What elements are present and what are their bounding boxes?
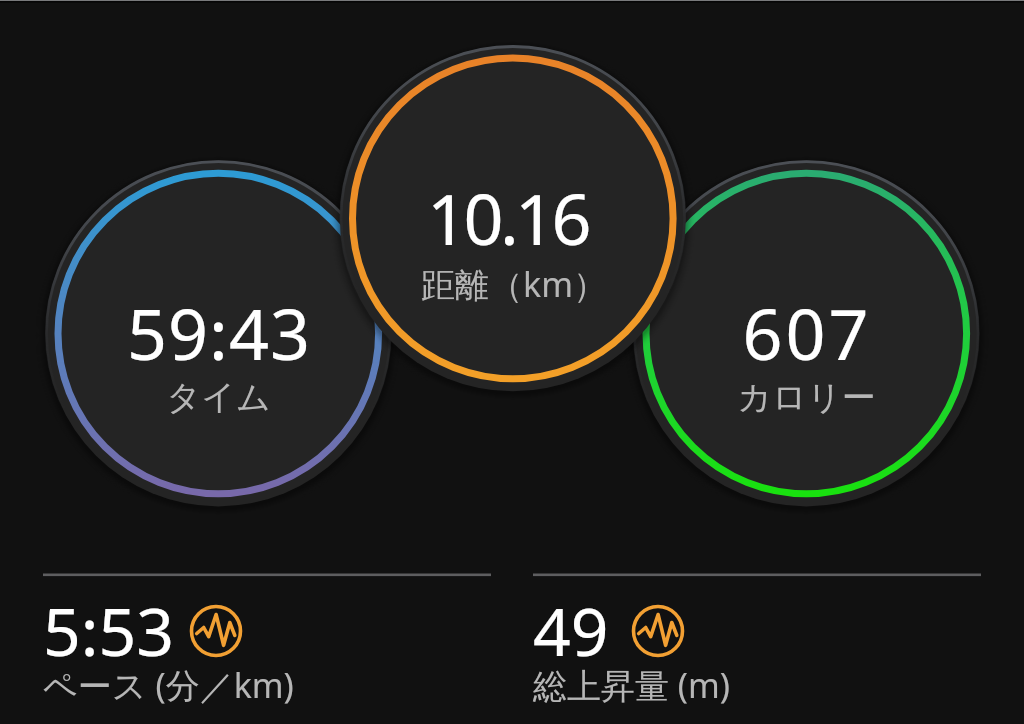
staticText: 607 [742,285,872,380]
other: Pace [189,604,243,658]
button[interactable]: 10.16 [353,58,674,379]
staticText: 5:53 [43,585,174,675]
staticText: 総上昇量 (m) [533,662,731,708]
staticText: タイム [166,376,271,419]
staticText: ペース (分／km) [43,662,294,708]
button[interactable]: 5:53 [43,560,513,724]
staticText: 10.16 [427,170,588,265]
other: Elevation gain [631,604,685,658]
staticText: 49 [533,585,609,675]
staticText: 距離（km） [421,261,607,307]
staticText: 59:43 [127,285,311,380]
button[interactable]: 59:43 [58,173,379,494]
staticText: カロリー [737,376,876,419]
button[interactable]: 607 [646,173,967,494]
button[interactable]: 49 [533,560,1003,724]
